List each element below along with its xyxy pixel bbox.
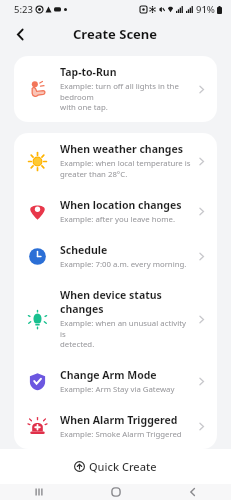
staticText: Example: Arm Stay via Gateway [60,384,175,395]
button[interactable]: Tap-to-Run [14,56,217,122]
staticText: Example: when local temperature is great… [60,158,191,180]
staticText: Tap-to-Run [60,65,117,79]
staticText: Create Scene [73,25,158,43]
staticText: When device status changes [60,288,192,316]
button[interactable]: Schedule [14,234,217,279]
staticText: Example: 7:00 a.m. every morning. [60,259,187,270]
button[interactable]: Recents [21,484,57,500]
staticText: 5:23 [14,3,33,16]
button[interactable]: Quick Create [0,449,231,484]
button[interactable]: Back [175,484,211,500]
button[interactable]: When Alarm Triggered [14,404,217,449]
staticText: When weather changes [60,142,183,156]
staticText: Example: after you leave home. [60,214,175,225]
button[interactable]: When weather changes [14,133,217,189]
staticText: Example: Smoke Alarm Triggered [60,429,182,440]
staticText: When location changes [60,198,182,212]
button[interactable]: Change Arm Mode [14,359,217,404]
button[interactable]: When device status changes [14,279,217,359]
button[interactable]: Home [98,484,134,500]
staticText: 91% [196,3,215,16]
staticText: Change Arm Mode [60,368,157,382]
button[interactable]: Back [7,21,33,47]
staticText: Example: when an unusual activity is det… [60,318,192,350]
staticText: Example: turn off all lights in the bedr… [60,81,192,113]
staticText: Quick Create [89,459,157,474]
staticText: Schedule [60,243,108,257]
staticText: When Alarm Triggered [60,413,178,427]
button[interactable]: When location changes [14,189,217,234]
